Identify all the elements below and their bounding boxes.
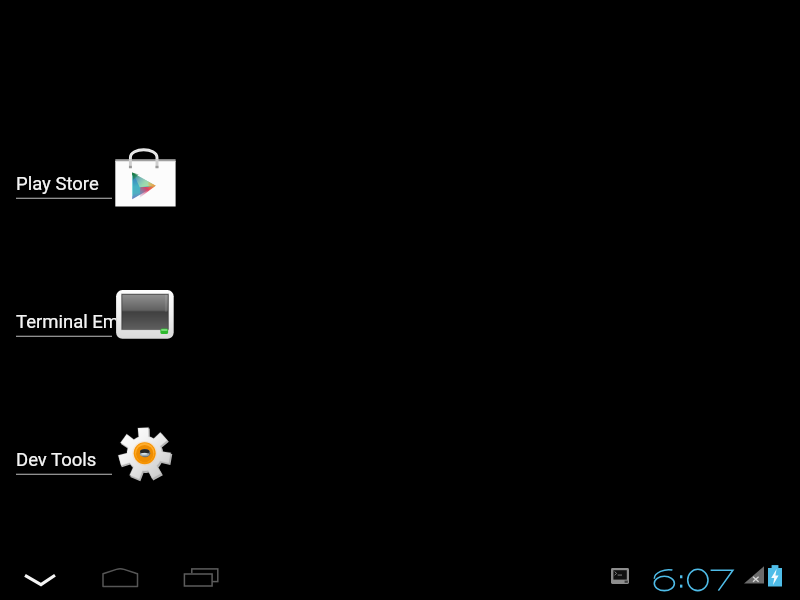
button[interactable]: Clock 6:07 xyxy=(648,552,740,600)
button[interactable]: Dev Tools xyxy=(0,422,180,486)
button[interactable]: Play Store xyxy=(0,146,180,210)
button[interactable]: Recent apps xyxy=(172,552,232,600)
button[interactable]: Terminal Emulator xyxy=(0,284,180,348)
button[interactable]: Home xyxy=(88,552,152,600)
button[interactable]: Back xyxy=(10,552,70,600)
staticText: Terminal Emulator xyxy=(16,311,116,333)
staticText: Play Store xyxy=(16,173,116,195)
other: No signal xyxy=(740,552,768,600)
staticText: Dev Tools xyxy=(16,449,116,471)
other: Battery charging xyxy=(762,552,790,600)
button[interactable]: Terminal notification xyxy=(602,552,638,600)
